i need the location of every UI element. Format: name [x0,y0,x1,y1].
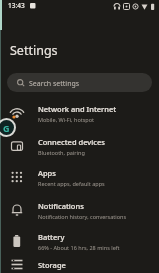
staticText: Settings [10,42,58,59]
button[interactable]: Storage [0,250,159,273]
staticText: 13:43 [8,1,25,10]
button[interactable]: Apps [0,162,159,192]
staticText: Storage [38,260,66,270]
staticText: Bluetooth, pairing [38,149,85,156]
staticText: Notifications [38,201,84,211]
staticText: Connected devices [38,137,105,147]
staticText: G [3,122,10,134]
button[interactable]: Network and Internet [0,98,159,128]
staticText: Apps [38,168,56,178]
button[interactable]: Search settings [7,73,152,92]
staticText: 66% - About 16 hrs, 28 mins left [38,244,120,251]
staticText: Recent apps, default apps [38,180,105,187]
staticText: Network and Internet [38,104,117,114]
button[interactable]: Notifications [0,195,159,225]
staticText: Battery [38,232,65,242]
staticText: Search settings [29,79,80,89]
staticText: Notification history, conversations [38,213,127,220]
staticText: Mobile, Wi-Fi, hotspot [38,116,95,123]
button[interactable]: Battery [0,226,159,256]
button[interactable]: Connected devices [0,131,159,161]
